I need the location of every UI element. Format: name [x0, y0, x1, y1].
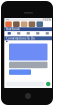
button[interactable]: Send	[46, 82, 50, 86]
button[interactable]: Tab	[14, 31, 23, 36]
button[interactable]: Tab	[33, 31, 42, 36]
button[interactable]: Tab	[42, 31, 52, 36]
button[interactable]: Tab	[23, 31, 33, 36]
staticText: •••	[6, 18, 9, 21]
staticText: Conversations To Do	[6, 37, 35, 40]
staticText: facebook	[6, 27, 20, 31]
staticText: 100%	[42, 18, 50, 21]
button[interactable]: Tab	[4, 31, 14, 36]
